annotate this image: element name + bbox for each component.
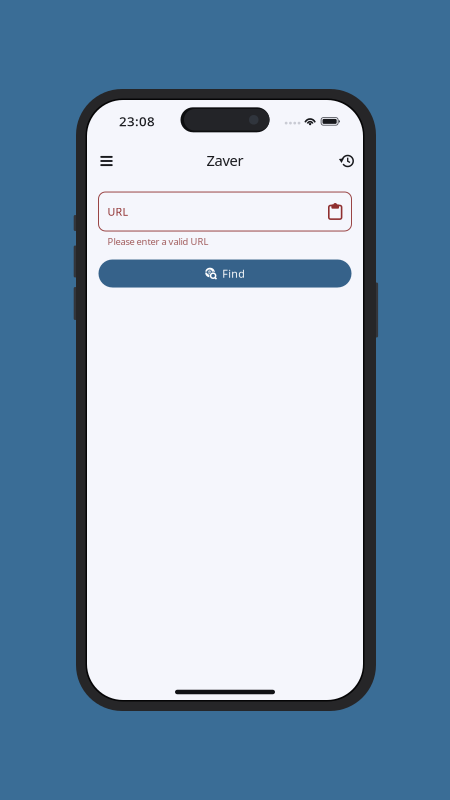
button[interactable]: Paste from clipboard — [322, 198, 348, 224]
staticText: Find — [222, 266, 245, 281]
button[interactable]: Find — [98, 259, 351, 287]
button[interactable]: URL — [98, 192, 351, 231]
staticText: Zaver — [207, 151, 244, 170]
staticText: URL — [107, 204, 128, 219]
staticText: Please enter a valid URL — [107, 235, 208, 248]
staticText: 23:08 — [119, 112, 155, 130]
button[interactable]: History — [331, 146, 361, 176]
button[interactable]: Menu — [91, 146, 121, 176]
